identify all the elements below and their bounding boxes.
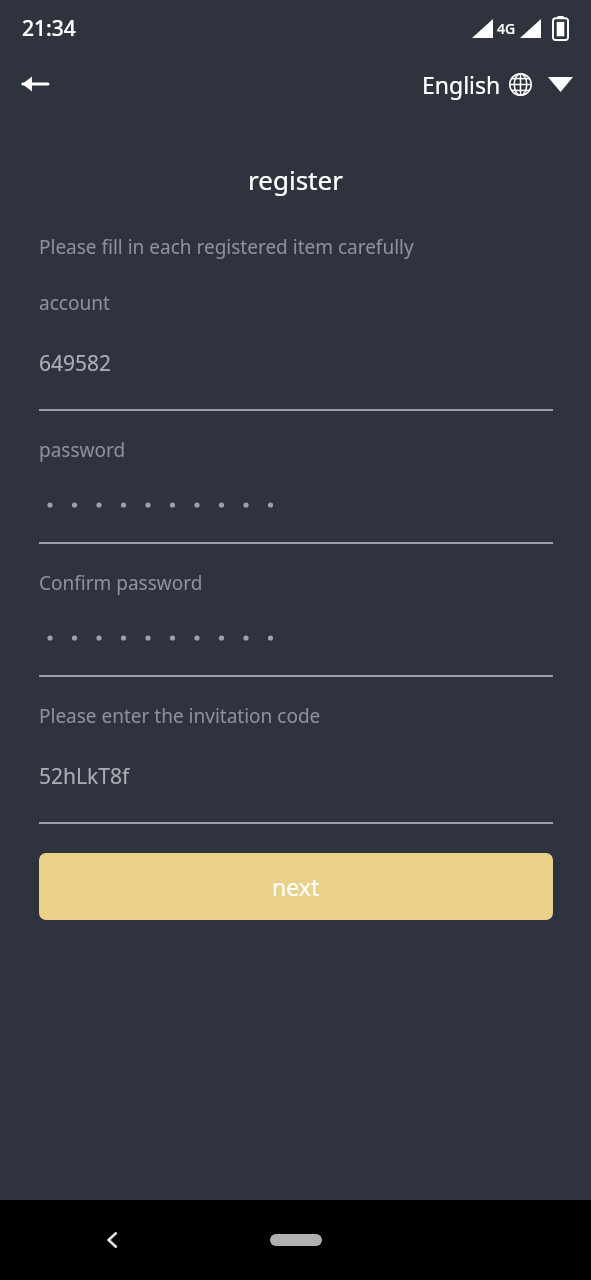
staticText: password — [39, 437, 126, 463]
staticText: English — [422, 69, 501, 100]
staticText: register — [0, 162, 591, 197]
staticText: next — [272, 871, 320, 902]
button[interactable]: Back — [88, 1215, 138, 1265]
staticText: 649582 — [39, 349, 112, 378]
staticText: 52hLkT8f — [39, 762, 130, 791]
button[interactable]: next — [39, 853, 553, 920]
button[interactable]: English — [422, 69, 577, 100]
staticText: Please fill in each registered item care… — [39, 234, 414, 260]
staticText: Confirm password — [39, 570, 203, 596]
button[interactable]: Back — [12, 61, 58, 107]
button[interactable]: Home — [270, 1234, 322, 1246]
staticText: Please enter the invitation code — [39, 703, 321, 729]
staticText: 4G — [497, 19, 516, 38]
staticText: account — [39, 290, 110, 316]
staticText: 21:34 — [22, 14, 76, 43]
